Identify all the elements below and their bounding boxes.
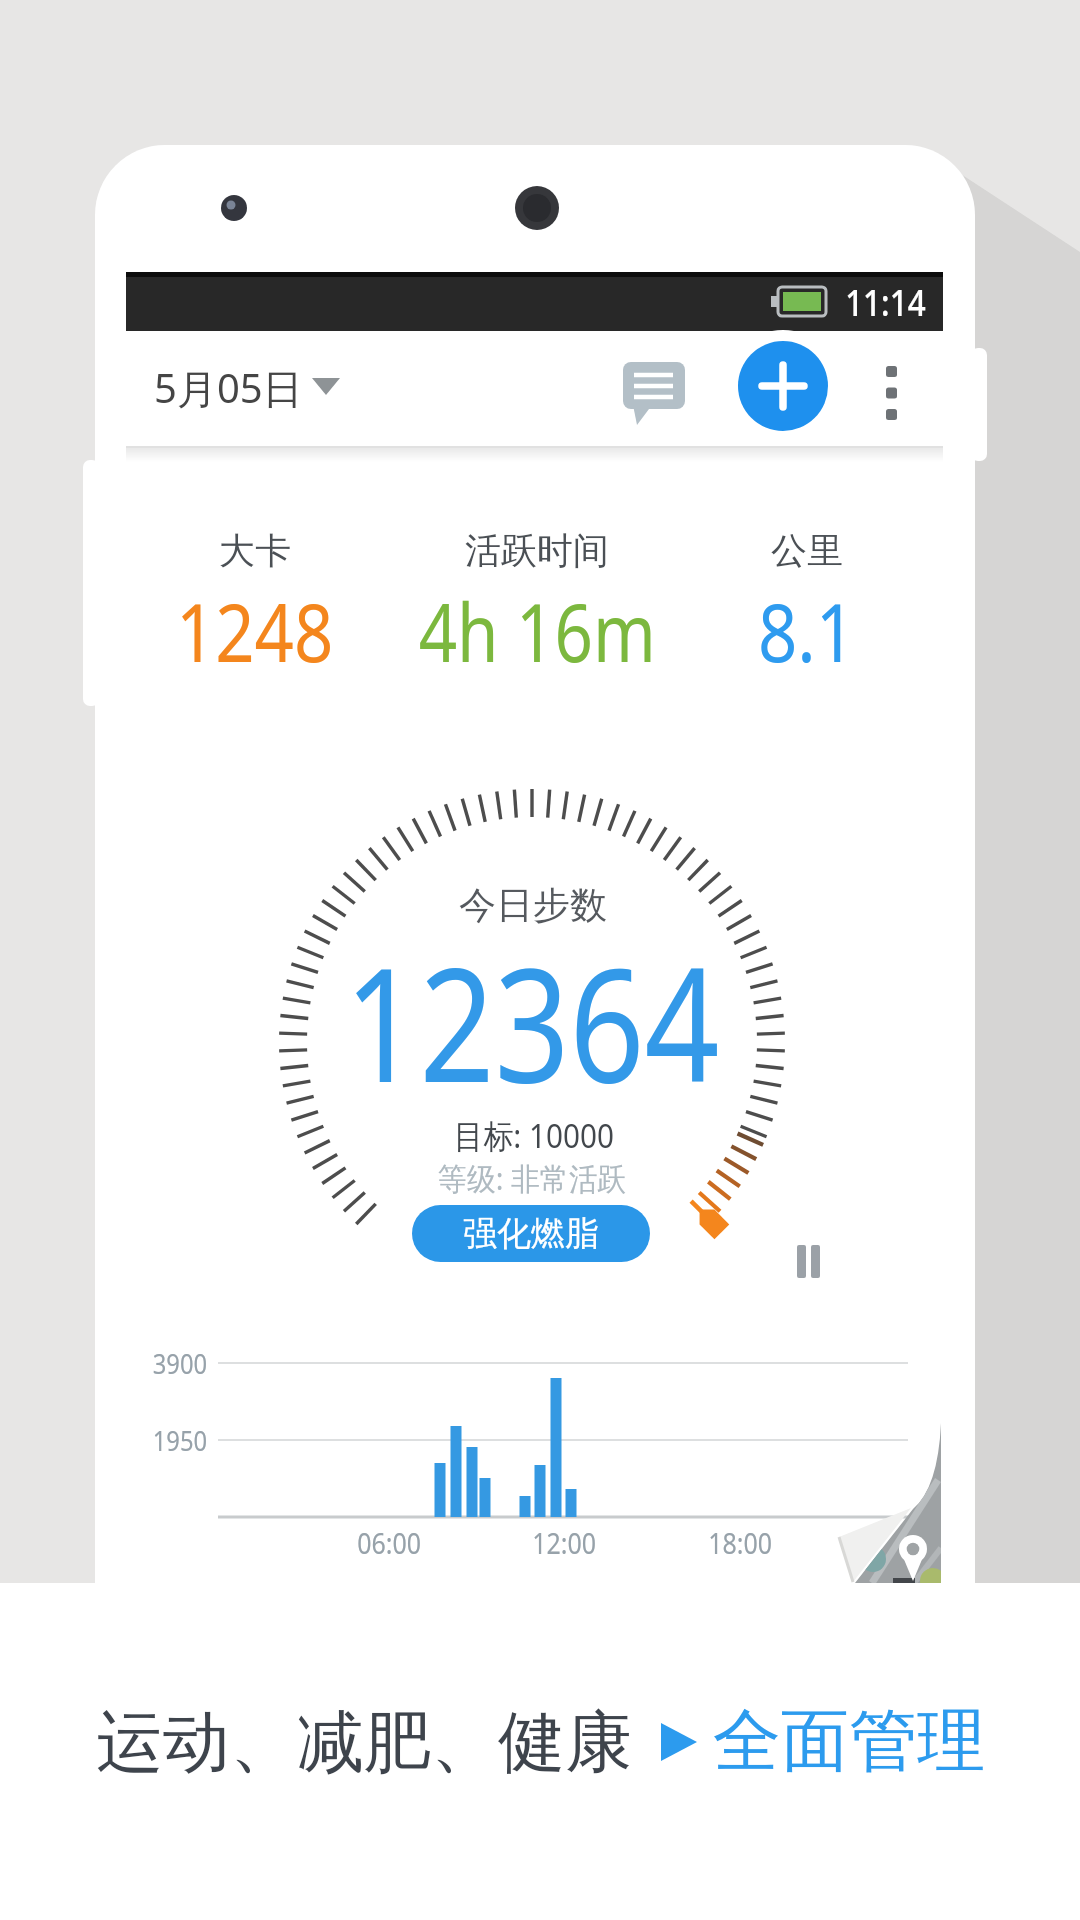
staticText: 等级: 非常活跃 [438,1157,627,1199]
staticText: 公里 [771,528,843,573]
button[interactable] [787,1235,831,1288]
staticText: 11:14 [845,276,926,326]
staticText: 目标: 10000 [454,1113,614,1158]
staticText: 12364 [344,913,720,1128]
staticText: 4h 16m [419,576,656,685]
staticText: 活跃时间 [465,528,609,573]
button[interactable] [613,352,695,430]
staticText: 1248 [176,576,334,685]
staticText: 3900 [153,1345,207,1382]
staticText: 运动、减肥、健康 [96,1700,632,1784]
staticText: 8.1 [758,576,855,685]
staticText: 全面管理 [713,1699,985,1785]
button[interactable] [868,352,916,432]
staticText: 5月05日 [154,360,303,415]
staticText: 06:00 [357,1523,422,1562]
staticText: 今日步数 [459,882,607,929]
staticText: 12:00 [532,1523,597,1562]
staticText: 大卡 [219,528,291,573]
button[interactable] [140,350,355,425]
button[interactable] [738,341,828,431]
staticText: 18:00 [708,1523,773,1562]
staticText: 强化燃脂 [463,1212,599,1255]
staticText: 1950 [153,1422,207,1459]
button[interactable]: 强化燃脂 [412,1205,650,1262]
